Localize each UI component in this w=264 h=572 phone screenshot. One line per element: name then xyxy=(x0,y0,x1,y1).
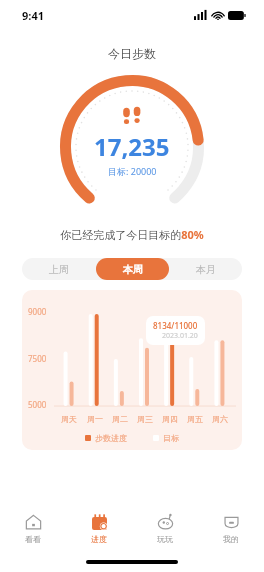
staticText: 9000 xyxy=(28,306,47,317)
staticText: 周四 xyxy=(162,414,178,424)
staticText: 8134/11000 xyxy=(153,320,198,331)
staticText: 7500 xyxy=(28,353,47,364)
button[interactable]: 进度 xyxy=(66,506,132,552)
staticText: 9:41 xyxy=(22,8,44,23)
button[interactable]: 玩玩 xyxy=(132,506,198,552)
staticText: 你已经完成了今日目标的80% xyxy=(0,227,264,242)
staticText: 周六 xyxy=(212,414,228,424)
button[interactable]: 本月 xyxy=(169,258,242,280)
staticText: 目标 xyxy=(163,433,179,443)
staticText: 周五 xyxy=(187,414,203,424)
staticText: 我的 xyxy=(223,534,239,544)
staticText: 看看 xyxy=(25,534,41,544)
staticText: 目标: 20000 xyxy=(108,165,157,177)
staticText: 上周 xyxy=(49,263,69,276)
button[interactable]: 我的 xyxy=(198,506,264,552)
staticText: 本月 xyxy=(196,263,216,276)
button[interactable]: 本周 xyxy=(96,258,169,280)
staticText: 步数进度 xyxy=(95,433,127,443)
staticText: 周二 xyxy=(112,414,128,424)
staticText: 今日步数 xyxy=(0,46,264,61)
staticText: 玩玩 xyxy=(157,534,173,544)
staticText: 周三 xyxy=(137,414,153,424)
staticText: 2023.01.20 xyxy=(162,331,198,341)
staticText: 周天 xyxy=(61,414,77,424)
staticText: 5000 xyxy=(28,399,47,410)
staticText: 进度 xyxy=(91,534,107,544)
staticText: 17,235 xyxy=(94,130,170,163)
button[interactable]: 看看 xyxy=(0,506,66,552)
staticText: 本周 xyxy=(123,263,143,276)
staticText: 周一 xyxy=(87,414,103,424)
button[interactable]: 上周 xyxy=(22,258,96,280)
